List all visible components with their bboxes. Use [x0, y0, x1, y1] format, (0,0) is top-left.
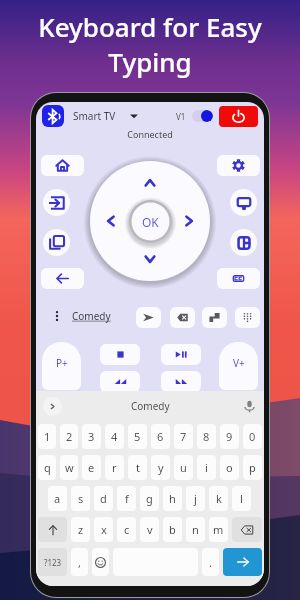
button[interactable]: 1	[38, 424, 56, 449]
button[interactable]: Subtitles	[217, 268, 260, 289]
button[interactable]: c	[117, 517, 136, 542]
staticText: w	[65, 460, 74, 475]
button[interactable]: Shift	[38, 517, 67, 542]
button[interactable]: t	[128, 455, 147, 480]
button[interactable]: Settings	[217, 155, 260, 176]
button[interactable]: Multiview	[230, 229, 257, 256]
staticText: e	[88, 460, 95, 475]
button[interactable]: P+	[42, 342, 81, 390]
button[interactable]: j	[186, 486, 205, 511]
button[interactable]: d	[94, 486, 113, 511]
button[interactable]: Apps	[43, 229, 70, 256]
button[interactable]: 6	[151, 424, 170, 449]
button[interactable]: V+	[219, 342, 258, 390]
button[interactable]: o	[220, 455, 239, 480]
button[interactable]: 4	[105, 424, 124, 449]
button[interactable]: x	[94, 517, 113, 542]
button[interactable]: 3	[82, 424, 101, 449]
button[interactable]: z	[71, 517, 90, 542]
button[interactable]: f	[117, 486, 136, 511]
button[interactable]: Up	[141, 174, 159, 192]
button[interactable]: u	[174, 455, 193, 480]
button[interactable]: Left	[102, 212, 120, 230]
button[interactable]: w	[60, 455, 78, 480]
button[interactable]: 0	[243, 424, 262, 449]
button[interactable]: Enter	[202, 307, 227, 328]
button[interactable]: 5	[128, 424, 147, 449]
button[interactable]: Rewind	[100, 371, 140, 392]
button[interactable]: n	[186, 517, 205, 542]
staticText: u	[180, 460, 187, 475]
button[interactable]: g	[140, 486, 159, 511]
button[interactable]: Power	[219, 106, 258, 127]
button[interactable]: Backspace	[232, 517, 262, 542]
button[interactable]: Send	[136, 307, 161, 328]
button[interactable]: Screen	[230, 189, 257, 216]
staticText: t	[136, 460, 140, 475]
button[interactable]: q	[38, 455, 56, 480]
button[interactable]: Source	[43, 189, 70, 216]
button[interactable]: Fast forward	[161, 371, 201, 392]
button[interactable]: ,	[71, 548, 88, 576]
staticText: 6	[157, 429, 164, 444]
button[interactable]: y	[151, 455, 170, 480]
staticText: Comedy	[72, 309, 111, 323]
staticText: k	[216, 491, 222, 506]
staticText: d	[100, 491, 107, 506]
button[interactable]: e	[82, 455, 101, 480]
button[interactable]: 8	[197, 424, 216, 449]
staticText: y	[158, 460, 164, 475]
button[interactable]: Voice input	[243, 400, 256, 413]
staticText: n	[192, 522, 199, 537]
button[interactable]: ?123	[38, 548, 67, 576]
button[interactable]: Backspace	[170, 307, 195, 328]
staticText: ,	[78, 555, 81, 570]
button[interactable]: Back	[41, 268, 84, 289]
staticText: Connected	[36, 128, 264, 140]
button[interactable]: 9	[220, 424, 239, 449]
staticText: 4	[111, 429, 118, 444]
button[interactable]: s	[71, 486, 90, 511]
staticText: v	[147, 522, 153, 537]
button[interactable]: v	[140, 517, 159, 542]
staticText: Keyboard for Easy	[38, 9, 262, 44]
button[interactable]: .	[202, 548, 219, 576]
button[interactable]: b	[163, 517, 182, 542]
button[interactable]: Keypad	[235, 307, 260, 328]
staticText: Smart TV	[73, 109, 116, 123]
staticText: i	[205, 460, 208, 475]
button[interactable]: a	[48, 486, 67, 511]
button[interactable]: p	[243, 455, 262, 480]
staticText: o	[226, 460, 233, 475]
button[interactable]: OK	[125, 196, 176, 247]
button[interactable]: Expand suggestions	[43, 397, 62, 416]
button[interactable]: 7	[174, 424, 193, 449]
button[interactable]: Right	[180, 212, 198, 230]
staticText: r	[112, 460, 117, 475]
button[interactable]: m	[209, 517, 228, 542]
button[interactable]: h	[163, 486, 182, 511]
button[interactable]: i	[197, 455, 216, 480]
button[interactable]: Down	[141, 250, 159, 268]
button[interactable]: More options	[50, 309, 64, 323]
button[interactable]: l	[232, 486, 251, 511]
staticText: 9	[226, 429, 233, 444]
staticText: 2	[66, 429, 73, 444]
button[interactable]: Bluetooth	[42, 105, 64, 127]
button[interactable]: Enter	[223, 548, 262, 576]
staticText: 8	[203, 429, 210, 444]
button[interactable]: Stop	[100, 344, 140, 365]
button[interactable]: Play pause	[161, 344, 201, 365]
button[interactable]: r	[105, 455, 124, 480]
staticText: x	[101, 522, 107, 537]
staticText: 0	[249, 429, 256, 444]
button[interactable]: Emoji	[92, 548, 109, 576]
button[interactable]: k	[209, 486, 228, 511]
button[interactable]: Power toggle	[192, 110, 213, 122]
button[interactable]: Home	[41, 155, 84, 176]
staticText: j	[194, 491, 197, 506]
staticText: P+	[56, 356, 68, 370]
button[interactable]: 2	[60, 424, 78, 449]
staticText: l	[240, 491, 243, 506]
